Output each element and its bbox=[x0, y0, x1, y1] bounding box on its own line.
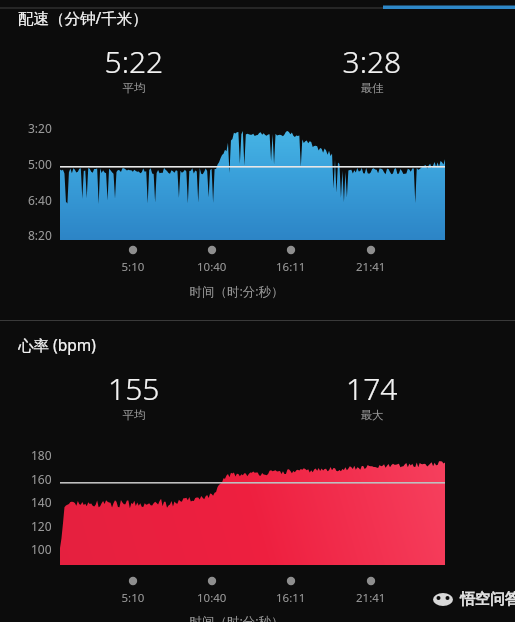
button[interactable]: Workout pace and heart rate charts bbox=[0, 0, 515, 622]
